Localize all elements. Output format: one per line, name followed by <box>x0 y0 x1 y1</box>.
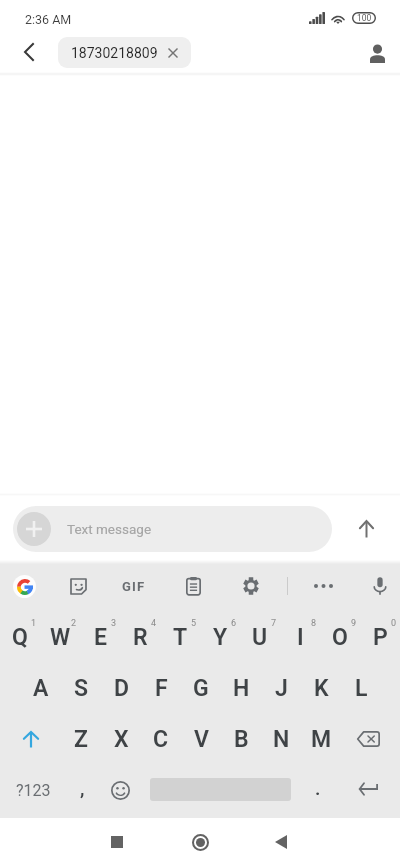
button[interactable]: Emoji <box>100 765 140 815</box>
button[interactable]: Y <box>200 612 240 662</box>
button[interactable]: Clipboard <box>171 564 215 608</box>
staticText: Q <box>12 624 28 651</box>
button[interactable]: Send message <box>344 507 388 551</box>
staticText: N <box>273 726 290 753</box>
staticText: W <box>50 624 71 651</box>
staticText: 8 <box>311 618 317 629</box>
staticText: U <box>252 624 268 651</box>
staticText: 6 <box>231 618 237 629</box>
button[interactable]: Z <box>61 714 101 764</box>
button[interactable]: S <box>61 663 101 713</box>
button[interactable]: . <box>298 763 338 813</box>
button[interactable]: X <box>101 714 141 764</box>
staticText: T <box>173 624 188 651</box>
button[interactable]: 18730218809 <box>58 37 191 68</box>
button[interactable]: H <box>221 663 261 713</box>
button[interactable]: Text message <box>13 506 332 552</box>
staticText: 2 <box>71 618 77 629</box>
staticText: 18730218809 <box>71 45 158 61</box>
staticText: D <box>114 675 129 702</box>
staticText: GIF <box>122 579 146 594</box>
button[interactable]: Home <box>176 818 224 866</box>
staticText: Y <box>213 624 228 651</box>
button[interactable]: F <box>141 663 181 713</box>
button[interactable]: Enter <box>340 765 396 815</box>
staticText: O <box>332 624 348 651</box>
button[interactable]: M <box>301 714 341 764</box>
staticText: M <box>311 726 332 753</box>
staticText: B <box>234 726 249 753</box>
button[interactable]: More options <box>301 564 345 608</box>
button[interactable]: Shift <box>3 714 59 764</box>
staticText: 9 <box>351 618 357 629</box>
staticText: C <box>153 726 169 753</box>
staticText: E <box>94 624 107 651</box>
staticText: . <box>315 777 321 799</box>
staticText: J <box>275 675 288 702</box>
staticText: , <box>80 777 85 799</box>
staticText: F <box>155 675 168 702</box>
button[interactable]: V <box>181 714 221 764</box>
button[interactable]: Space <box>140 765 301 815</box>
button[interactable]: GIF <box>112 564 156 608</box>
button[interactable]: Contact details <box>355 31 399 75</box>
button[interactable]: Voice input <box>358 564 400 608</box>
staticText: X <box>114 726 129 753</box>
button[interactable]: Q <box>0 612 40 662</box>
staticText: 4 <box>151 618 157 629</box>
button[interactable]: I <box>280 612 320 662</box>
button[interactable]: , <box>62 763 102 813</box>
staticText: ?123 <box>16 781 51 800</box>
button[interactable]: Recent apps <box>93 818 141 866</box>
staticText: P <box>373 624 388 651</box>
staticText: 7 <box>271 618 277 629</box>
button[interactable]: G <box>181 663 221 713</box>
button[interactable]: R <box>120 612 160 662</box>
staticText: 100 <box>357 13 372 23</box>
staticText: 0 <box>391 618 397 629</box>
staticText: 5 <box>191 618 197 629</box>
button[interactable]: T <box>160 612 200 662</box>
button[interactable]: Backspace <box>340 714 396 764</box>
button[interactable]: A <box>21 663 61 713</box>
button[interactable]: Stickers <box>56 564 100 608</box>
button[interactable]: W <box>40 612 80 662</box>
staticText: R <box>133 624 148 651</box>
button[interactable]: K <box>301 663 341 713</box>
button[interactable]: Back <box>257 818 305 866</box>
button[interactable]: D <box>101 663 141 713</box>
staticText: A <box>33 675 49 702</box>
button[interactable]: ?123 <box>4 765 60 815</box>
button[interactable]: B <box>221 714 261 764</box>
button[interactable]: Back <box>6 30 50 74</box>
button[interactable]: E <box>80 612 120 662</box>
staticText: H <box>233 675 250 702</box>
staticText: K <box>314 675 329 702</box>
staticText: G <box>193 675 209 702</box>
staticText: Z <box>74 726 88 753</box>
button[interactable]: P <box>360 612 400 662</box>
button[interactable]: J <box>261 663 301 713</box>
staticText: L <box>355 675 368 702</box>
staticText: Text message <box>67 521 152 537</box>
button[interactable]: Keyboard settings <box>229 564 273 608</box>
staticText: I <box>297 624 304 651</box>
staticText: 2:36 AM <box>25 12 72 27</box>
staticText: S <box>74 675 89 702</box>
button[interactable]: Google search <box>2 564 46 608</box>
button[interactable]: O <box>320 612 360 662</box>
staticText: 1 <box>31 618 37 629</box>
button[interactable]: L <box>341 663 381 713</box>
staticText: V <box>194 726 209 753</box>
staticText: 3 <box>111 618 117 629</box>
button[interactable]: U <box>240 612 280 662</box>
button[interactable]: N <box>261 714 301 764</box>
button[interactable]: C <box>141 714 181 764</box>
